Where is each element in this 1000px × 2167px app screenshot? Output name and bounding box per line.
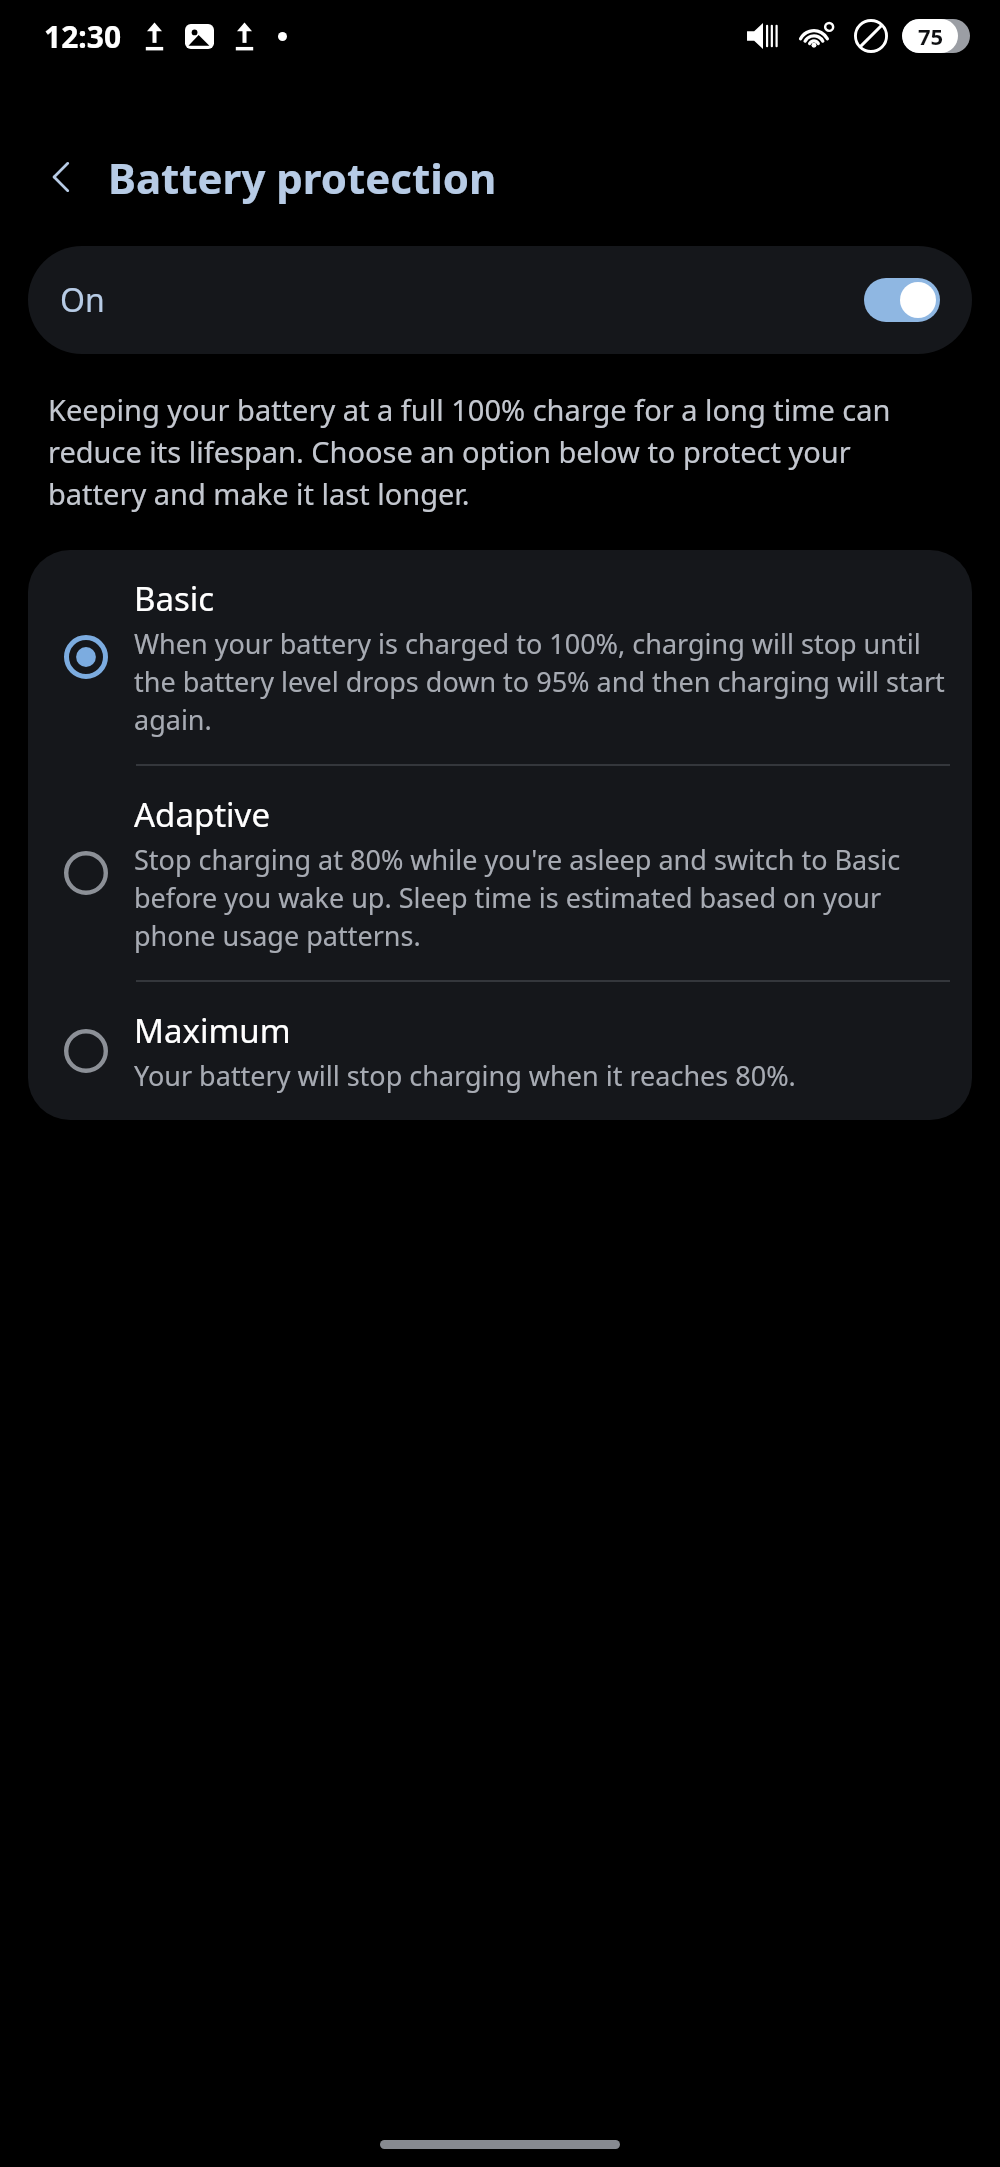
staticText: Maximum xyxy=(134,1008,291,1053)
staticText: 75 xyxy=(918,21,944,51)
button[interactable]: Basic xyxy=(28,550,972,764)
button[interactable]: On xyxy=(28,246,972,354)
staticText: On xyxy=(60,278,105,322)
staticText: Battery protection xyxy=(108,149,497,206)
staticText: Basic xyxy=(134,576,215,621)
staticText: Stop charging at 80% while you're asleep… xyxy=(134,841,948,954)
staticText: Your battery will stop charging when it … xyxy=(134,1057,796,1094)
staticText: Adaptive xyxy=(134,792,270,837)
button[interactable]: Maximum xyxy=(28,982,972,1120)
staticText: When your battery is charged to 100%, ch… xyxy=(134,625,948,738)
staticText: 12:30 xyxy=(44,16,122,57)
button[interactable]: Adaptive xyxy=(28,766,972,980)
staticText: Keeping your battery at a full 100% char… xyxy=(48,390,952,513)
button[interactable]: Back xyxy=(26,142,98,212)
